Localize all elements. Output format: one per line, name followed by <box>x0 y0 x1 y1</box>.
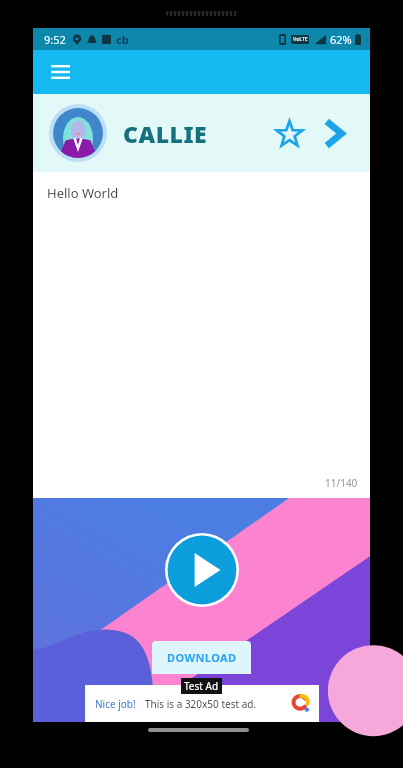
staticText: 62% <box>330 32 352 47</box>
button[interactable]: Open navigation menu <box>43 55 77 89</box>
staticText: 9:52 <box>44 32 66 47</box>
button[interactable]: Advertisement <box>33 498 370 722</box>
staticText: Hello World <box>47 184 119 202</box>
button[interactable]: CALLIE <box>33 94 370 172</box>
staticText: CALLIE <box>123 118 208 149</box>
button[interactable]: DOWNLOAD <box>152 641 251 674</box>
staticText: DOWNLOAD <box>167 650 237 665</box>
button[interactable]: Play video <box>165 533 239 607</box>
button[interactable]: Next <box>316 114 354 152</box>
staticText: VoLTE <box>293 36 308 43</box>
staticText: cb <box>116 32 129 47</box>
button[interactable]: Hello World <box>33 172 370 498</box>
staticText: Nice job! <box>95 697 136 711</box>
button[interactable]: Favorite <box>270 114 308 152</box>
staticText: This is a 320x50 test ad. <box>145 697 257 711</box>
staticText: 11/140 <box>325 476 358 490</box>
staticText: Test Ad <box>184 679 219 693</box>
